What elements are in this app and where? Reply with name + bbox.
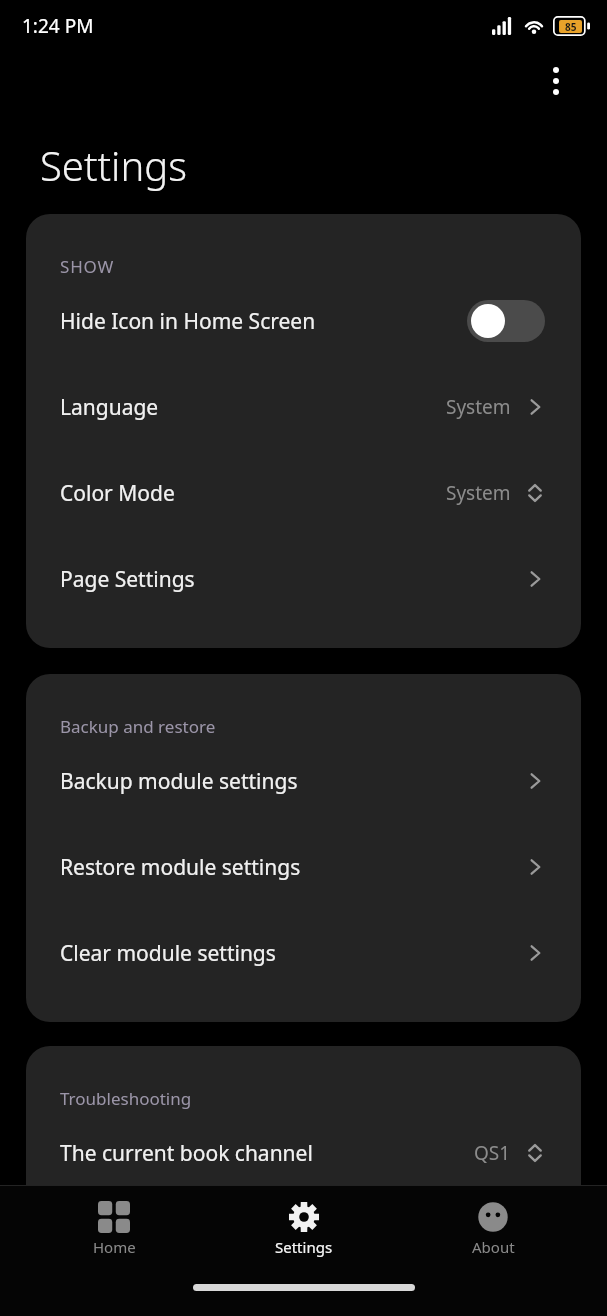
staticText: Color Mode	[60, 479, 446, 508]
staticText: Backup module settings	[60, 767, 523, 796]
button[interactable]: About	[418, 1186, 568, 1272]
staticText: Hide Icon in Home Screen	[60, 307, 467, 336]
staticText: System	[446, 394, 511, 420]
button[interactable]: Settings	[229, 1186, 379, 1272]
staticText: Settings	[40, 138, 187, 192]
staticText: Language	[60, 393, 446, 422]
staticText: Settings	[275, 1237, 333, 1257]
staticText: 1:24 PM	[22, 13, 94, 39]
button[interactable]: Home	[39, 1186, 189, 1272]
button[interactable]: More options	[539, 64, 573, 98]
staticText: About	[472, 1237, 515, 1257]
staticText: QS1	[474, 1140, 511, 1166]
staticText: Clear module settings	[60, 939, 523, 968]
staticText: Restore module settings	[60, 853, 523, 882]
staticText: Backup and restore	[60, 715, 216, 738]
button[interactable]: The current book channel	[26, 1110, 581, 1196]
button[interactable]: Page Settings	[26, 536, 581, 622]
button[interactable]: Backup module settings	[26, 738, 581, 824]
button[interactable]: Clear module settings	[26, 910, 581, 996]
button[interactable]: Color Mode	[26, 450, 581, 536]
staticText: Home	[93, 1237, 136, 1257]
staticText: SHOW	[60, 255, 115, 278]
staticText: System	[446, 480, 511, 506]
staticText: The current book channel	[60, 1139, 474, 1168]
button[interactable]: Hide Icon in Home Screen	[26, 278, 581, 364]
button[interactable]: Language	[26, 364, 581, 450]
staticText: 85	[565, 20, 577, 33]
staticText: Page Settings	[60, 565, 523, 594]
button[interactable]: Restore module settings	[26, 824, 581, 910]
staticText: Troubleshooting	[60, 1087, 192, 1110]
